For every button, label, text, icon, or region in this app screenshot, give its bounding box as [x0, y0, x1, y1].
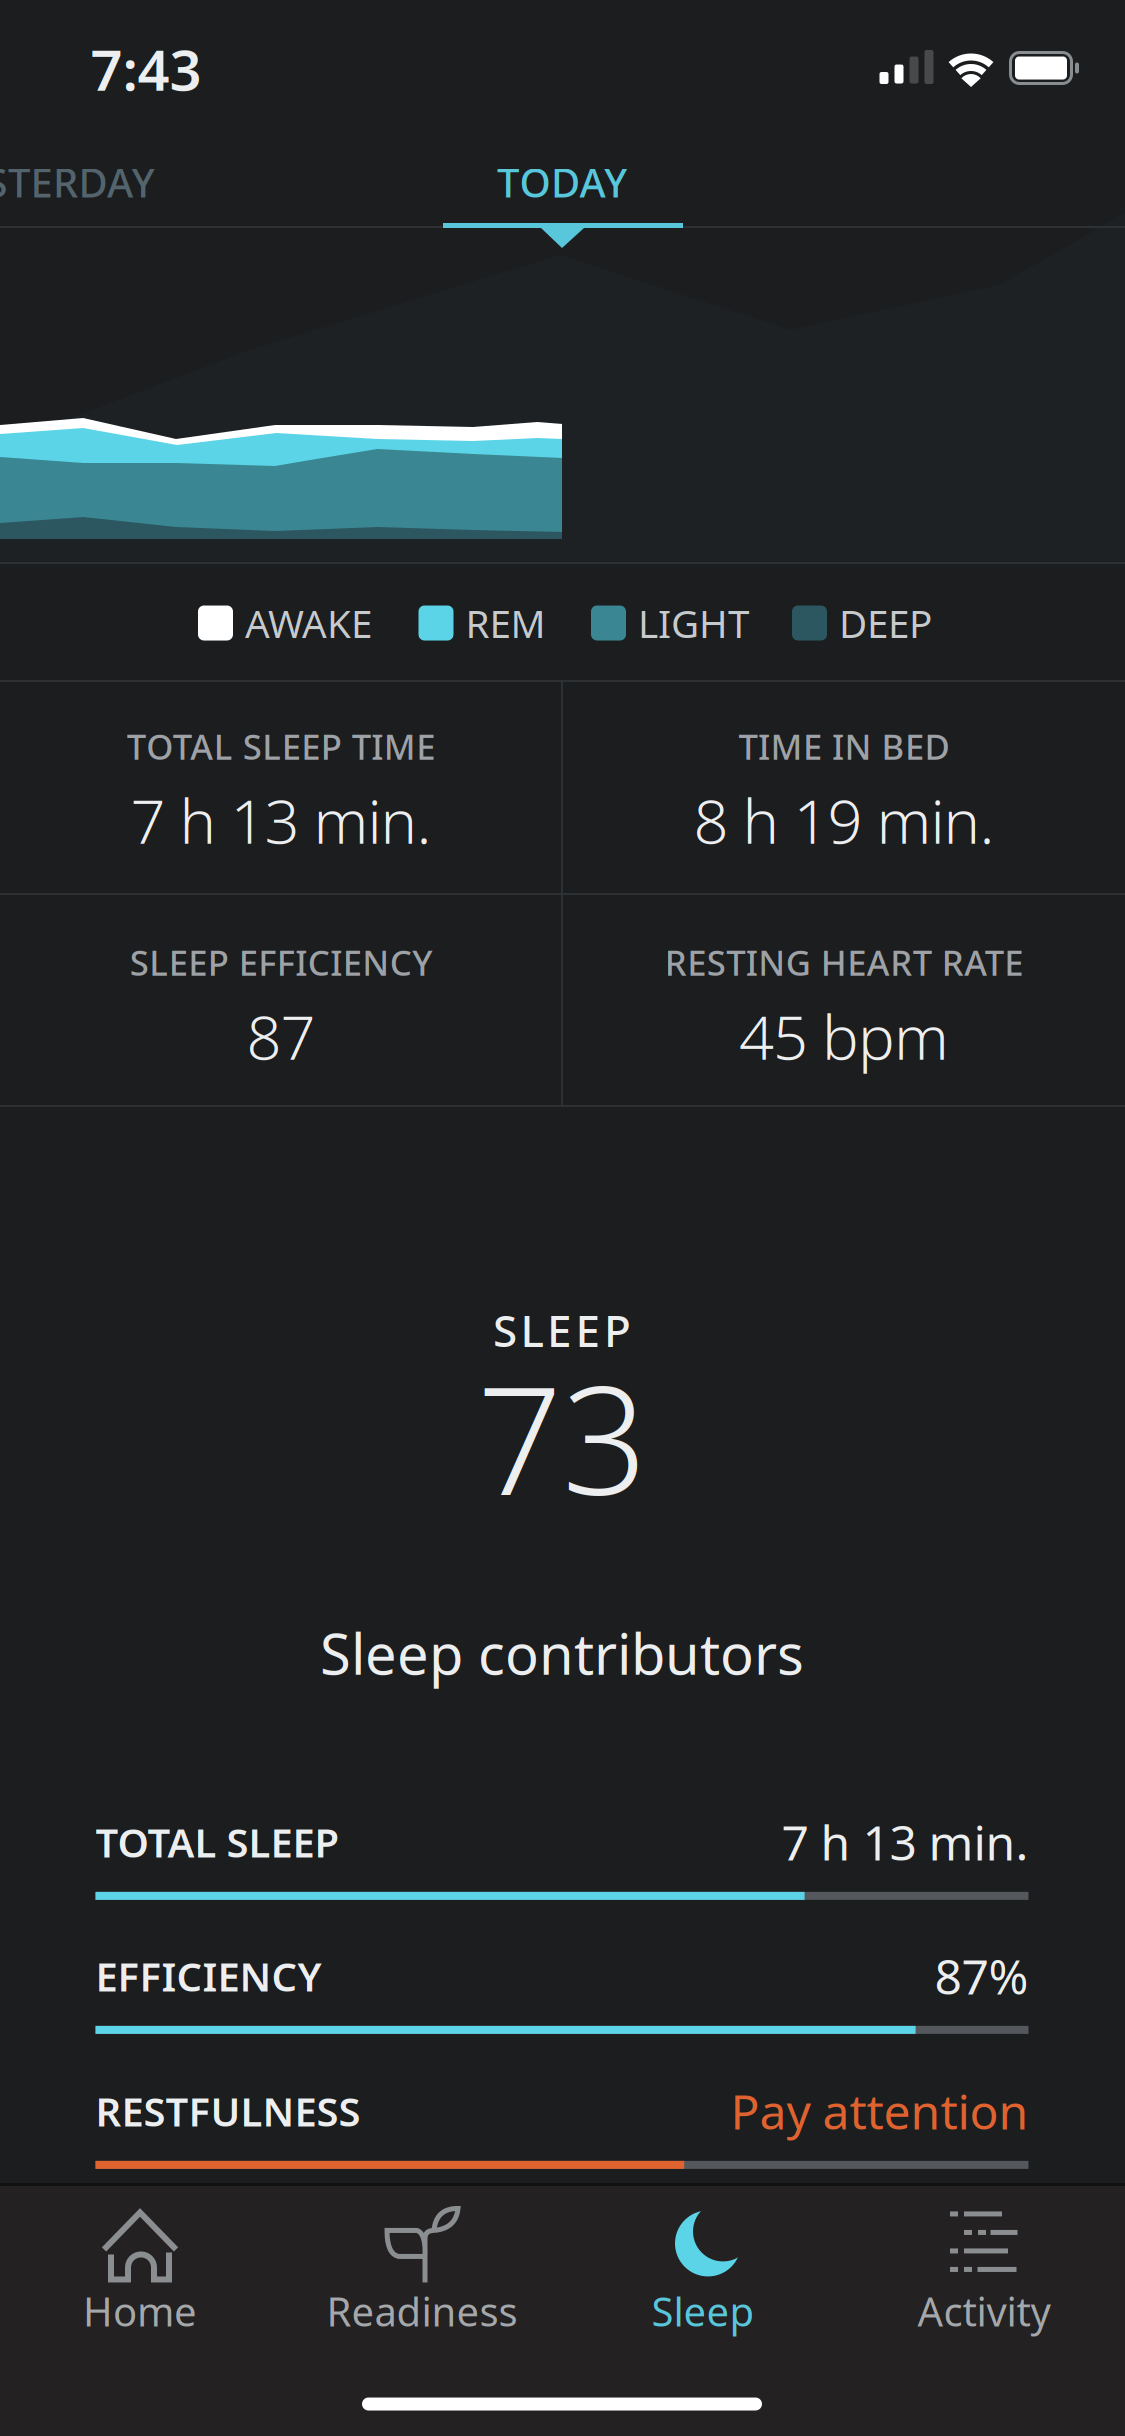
staticText: 7 h 13 min. — [781, 1810, 1028, 1874]
staticText: 7 h 13 min. — [130, 779, 431, 861]
staticText: 45 bpm — [739, 995, 949, 1077]
staticText: Sleep contributors — [320, 1616, 804, 1690]
staticText: 7:43 — [90, 32, 201, 106]
staticText: EFFICIENCY — [95, 1949, 321, 2002]
staticText: 87 — [246, 995, 315, 1077]
staticText: RESTFULNESS — [95, 2084, 360, 2137]
staticText: TODAY — [497, 155, 627, 208]
button[interactable]: Readiness — [282, 2195, 562, 2345]
staticText: Sleep — [651, 2284, 754, 2337]
staticText: AWAKE — [245, 597, 372, 649]
button[interactable]: Sleep — [563, 2195, 843, 2345]
staticText: LIGHT — [638, 597, 749, 649]
staticText: 8 h 19 min. — [693, 779, 994, 861]
staticText: SLEEP EFFICIENCY — [130, 939, 432, 985]
staticText: TOTAL SLEEP TIME — [127, 723, 435, 769]
staticText: REM — [465, 597, 545, 649]
button[interactable]: Home — [0, 2195, 280, 2345]
staticText: 87% — [934, 1944, 1028, 2008]
staticText: Pay attention — [730, 2079, 1028, 2143]
staticText: TOTAL SLEEP — [95, 1815, 339, 1868]
staticText: Readiness — [326, 2284, 517, 2337]
staticText: DEEP — [839, 597, 932, 649]
staticText: YESTERDAY — [0, 155, 154, 208]
staticText: Activity — [917, 2284, 1050, 2337]
button[interactable]: Activity — [844, 2195, 1124, 2345]
staticText: 73 — [477, 1338, 647, 1536]
button[interactable]: TODAY — [497, 155, 627, 208]
staticText: Home — [83, 2284, 197, 2337]
staticText: SLEEP — [493, 1301, 631, 1359]
button[interactable]: YESTERDAY — [0, 155, 154, 208]
staticText: RESTING HEART RATE — [665, 939, 1023, 985]
staticText: TIME IN BED — [738, 723, 949, 769]
